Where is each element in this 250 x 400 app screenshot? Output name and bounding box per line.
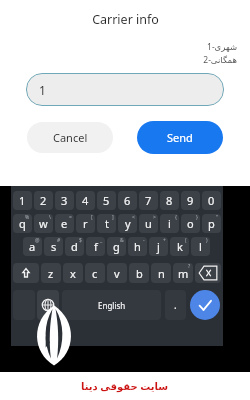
staticText: e [61,216,68,231]
button[interactable]: l [191,237,210,256]
button[interactable]: Enter [190,290,220,320]
staticText: d [71,239,78,254]
staticText: سایت حقوقی دینا [81,379,169,393]
staticText: Cancel [53,130,88,145]
staticText: ( [185,237,187,244]
button[interactable]: 6 [118,191,137,210]
staticText: # [57,237,61,244]
staticText: y [125,216,131,231]
button[interactable]: 1 [13,191,32,210]
button[interactable]: o [181,214,200,233]
button[interactable]: j [149,237,168,256]
staticText: + [163,237,166,244]
staticText: \ [49,214,51,221]
button[interactable]: z [41,263,61,283]
staticText: 2 [40,193,47,208]
staticText: 9 [187,193,194,208]
staticText: a [29,239,36,254]
staticText: k [177,239,183,254]
button[interactable]: 7 [139,191,158,210]
staticText: @ [35,237,40,244]
button[interactable]: b [129,263,149,283]
button[interactable]: Change language [37,290,59,320]
button[interactable]: . [165,290,186,320]
button[interactable]: u [139,214,158,233]
staticText: q [19,216,26,231]
button[interactable]: w [34,214,53,233]
button[interactable]: r [76,214,95,233]
staticText: > [153,214,156,221]
button[interactable]: t [97,214,116,233]
staticText: c [92,266,98,281]
staticText: s [51,239,57,254]
staticText: 6 [124,193,131,208]
button[interactable]: d [65,237,84,256]
button[interactable]: h [128,237,147,256]
button[interactable]: q [13,214,32,233]
button[interactable]: g [107,237,126,256]
button[interactable]: 9 [181,191,200,210]
button[interactable]: k [170,237,189,256]
button[interactable]: a [23,237,42,256]
button[interactable]: v [107,263,127,283]
button[interactable]: y [118,214,137,233]
staticText: h [134,239,141,254]
staticText: _ [100,237,103,244]
button[interactable]: 1 [26,73,224,106]
staticText: Carrier info [92,11,159,28]
staticText: { [175,214,177,221]
staticText: = [69,214,72,221]
staticText: 8 [166,193,173,208]
button[interactable]: 3 [55,191,74,210]
staticText: 4 [82,193,89,208]
staticText: o [187,216,194,231]
button[interactable]: Backspace [195,263,221,283]
button[interactable]: i [160,214,179,233]
button[interactable]: Send [137,121,223,154]
button[interactable]: m [173,263,193,283]
staticText: English [98,300,126,311]
staticText: n [158,266,165,281]
button[interactable]: f [86,237,105,256]
staticText: $ [79,237,82,244]
button[interactable]: n [151,263,171,283]
staticText: z [48,266,54,281]
staticText: - [143,237,145,244]
button[interactable]: 2 [34,191,53,210]
staticText: t [105,216,109,231]
button[interactable]: s [44,237,63,256]
staticText: b [136,266,143,281]
button[interactable]: 8 [160,191,179,210]
staticText: f [94,239,98,254]
button[interactable]: x [63,263,83,283]
staticText: 5 [103,193,110,208]
staticText: 2-همگانی [203,54,237,66]
button[interactable]: 0 [202,191,221,210]
staticText: v [114,266,120,281]
staticText: " [216,214,219,221]
button[interactable]: English [62,290,161,320]
staticText: ] [112,214,114,221]
staticText: % [25,214,30,221]
button[interactable]: c [85,263,105,283]
staticText: p [208,216,215,231]
button[interactable]: p [202,214,221,233]
staticText: 7 [145,193,152,208]
staticText: m [178,266,189,281]
staticText: u [145,216,152,231]
button[interactable]: 5 [97,191,116,210]
staticText: [ [91,214,93,221]
staticText: r [83,216,88,231]
button[interactable]: Shift [13,263,39,283]
button[interactable]: e [55,214,74,233]
staticText: 1 [39,82,46,98]
button[interactable]: 4 [76,191,95,210]
staticText: 1-شهری [207,41,237,53]
staticText: i [168,216,171,231]
staticText: ) [206,237,208,244]
staticText: 0 [208,193,215,208]
staticText: < [132,214,135,221]
button[interactable]: Cancel [27,122,113,153]
staticText: g [113,239,120,254]
